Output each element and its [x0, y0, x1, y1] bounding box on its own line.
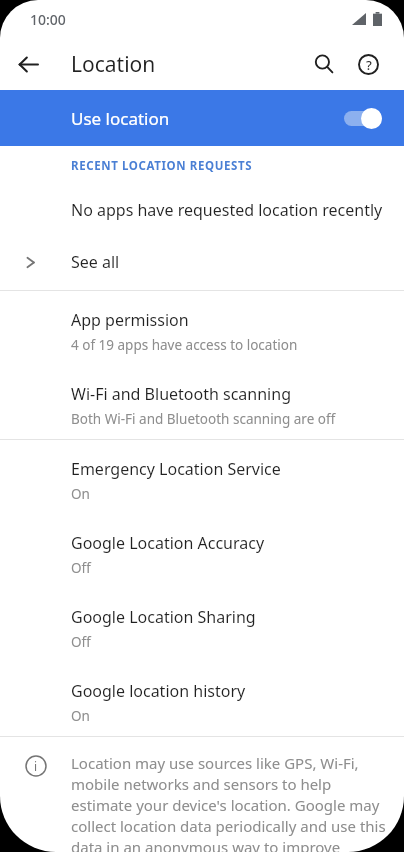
staticText: i — [34, 758, 38, 774]
staticText: Google Location Accuracy — [71, 532, 265, 554]
staticText: 4 of 19 apps have access to location — [71, 336, 298, 354]
button[interactable]: Back — [8, 44, 48, 84]
staticText: No apps have requested location recently — [71, 199, 383, 221]
staticText: Both Wi-Fi and Bluetooth scanning are of… — [71, 410, 336, 428]
staticText: 10:00 — [30, 10, 66, 29]
button[interactable]: Google Location Sharing — [0, 588, 404, 662]
staticText: Location may use sources like GPS, Wi-Fi… — [71, 753, 390, 852]
button[interactable]: Google location history — [0, 662, 404, 736]
staticText: Use location — [71, 107, 344, 130]
staticText: Google Location Sharing — [71, 606, 256, 628]
staticText: App permission — [71, 309, 189, 331]
staticText: See all — [71, 251, 120, 273]
staticText: RECENT LOCATION REQUESTS — [71, 158, 253, 174]
button[interactable]: Help — [346, 42, 390, 86]
button[interactable]: Search — [302, 42, 346, 86]
button[interactable]: App permission — [0, 291, 404, 365]
staticText: ? — [366, 56, 372, 74]
staticText: Off — [71, 559, 91, 577]
button[interactable]: Google Location Accuracy — [0, 514, 404, 588]
button[interactable]: See all — [0, 234, 404, 290]
button[interactable]: Wi-Fi and Bluetooth scanning — [0, 365, 404, 439]
staticText: Emergency Location Service — [71, 458, 281, 480]
staticText: On — [71, 485, 90, 503]
staticText: Location — [71, 50, 156, 79]
staticText: Off — [71, 633, 91, 651]
button[interactable]: Use location — [0, 90, 404, 146]
button[interactable]: No apps have requested location recently — [0, 186, 404, 234]
staticText: Wi-Fi and Bluetooth scanning — [71, 383, 291, 405]
staticText: Google location history — [71, 680, 246, 702]
staticText: On — [71, 707, 90, 725]
button[interactable]: Emergency Location Service — [0, 440, 404, 514]
